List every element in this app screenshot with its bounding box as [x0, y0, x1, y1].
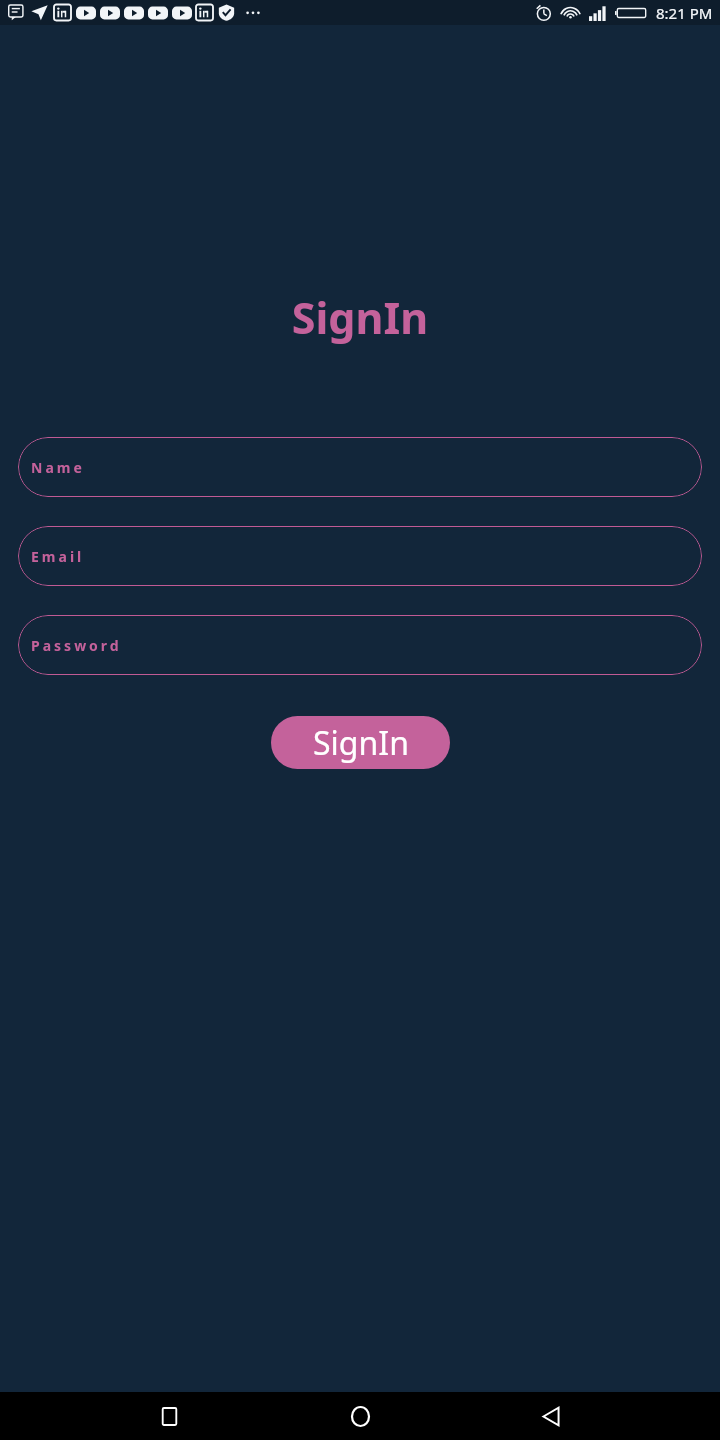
button[interactable]: Email — [18, 526, 702, 586]
button[interactable]: Back — [529, 1394, 573, 1438]
staticText: SignIn — [313, 721, 409, 765]
button[interactable]: Recent apps — [147, 1394, 191, 1438]
staticText: Name — [31, 458, 85, 477]
staticText: Email — [31, 547, 85, 566]
staticText: Password — [31, 636, 122, 655]
button[interactable]: Password — [18, 615, 702, 675]
button[interactable]: Home — [338, 1394, 382, 1438]
staticText: SignIn — [0, 288, 720, 347]
button[interactable]: SignIn — [271, 716, 450, 769]
button[interactable]: Name — [18, 437, 702, 497]
staticText: 8:21 PM — [656, 3, 713, 23]
